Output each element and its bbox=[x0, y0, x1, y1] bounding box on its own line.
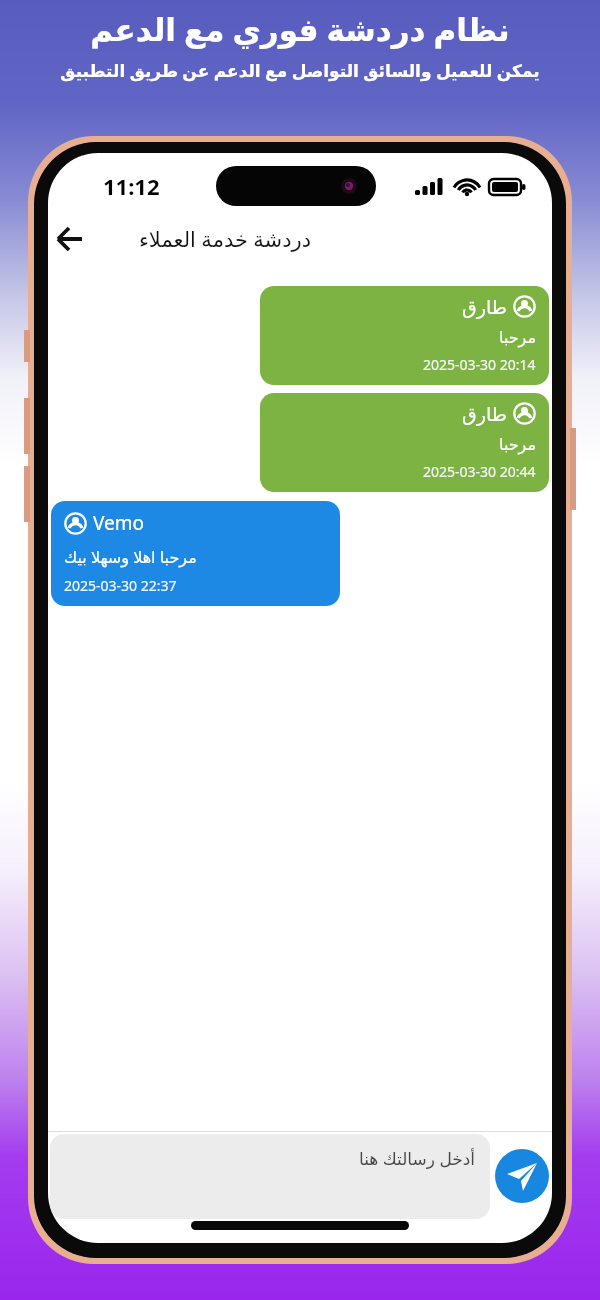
staticText: 2025-03-30 20:14 bbox=[423, 355, 536, 374]
staticText: نظام دردشة فوري مع الدعم bbox=[90, 8, 510, 50]
staticText: 11:12 bbox=[103, 171, 160, 201]
staticText: 2025-03-30 20:44 bbox=[423, 462, 536, 481]
button[interactable]: Send message bbox=[495, 1149, 549, 1203]
button[interactable]: Vemo bbox=[51, 501, 340, 606]
button[interactable]: Back bbox=[48, 217, 92, 261]
staticText: يمكن للعميل والسائق التواصل مع الدعم عن … bbox=[60, 59, 540, 82]
staticText: دردشة خدمة العملاء bbox=[139, 225, 312, 254]
staticText: طارق bbox=[462, 403, 507, 425]
staticText: مرحبا bbox=[499, 328, 536, 347]
staticText: طارق bbox=[462, 296, 507, 318]
staticText: أدخل رسالتك هنا bbox=[359, 1147, 476, 1170]
button[interactable]: أدخل رسالتك هنا bbox=[50, 1134, 490, 1219]
staticText: 2025-03-30 22:37 bbox=[64, 576, 177, 595]
staticText: مرحبا اهلا وسهلا بيك bbox=[64, 546, 197, 568]
button[interactable]: طارق bbox=[260, 393, 549, 492]
staticText: Vemo bbox=[93, 510, 144, 536]
staticText: مرحبا bbox=[499, 435, 536, 454]
button[interactable]: طارق bbox=[260, 286, 549, 385]
